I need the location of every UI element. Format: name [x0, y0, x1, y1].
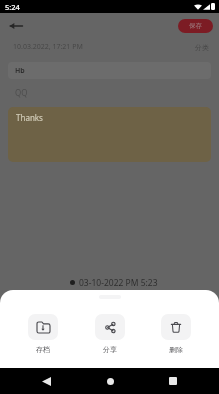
- button[interactable]: 删除: [161, 314, 191, 354]
- staticText: 保存: [189, 22, 202, 30]
- staticText: 分享: [103, 345, 117, 354]
- staticText: 删除: [169, 345, 183, 354]
- button[interactable]: Home: [101, 372, 119, 390]
- button[interactable]: Thanks: [8, 107, 211, 162]
- staticText: 03-10-2022 PM 5:23: [79, 277, 158, 289]
- button[interactable]: Back: [4, 17, 28, 35]
- staticText: QQ: [15, 87, 28, 98]
- button[interactable]: Recent apps: [164, 372, 182, 390]
- button[interactable]: Hb: [8, 62, 211, 79]
- staticText: 分类: [195, 43, 209, 52]
- staticText: Hb: [15, 66, 25, 76]
- staticText: 存档: [36, 345, 50, 354]
- staticText: 10.03.2022, 17:21 PM: [13, 42, 83, 52]
- button[interactable]: 存档: [28, 314, 58, 354]
- staticText: 5:24: [5, 2, 20, 12]
- button[interactable]: 保存: [178, 19, 213, 33]
- staticText: Thanks: [16, 112, 43, 123]
- button[interactable]: 分享: [95, 314, 125, 354]
- button[interactable]: Back: [37, 372, 55, 390]
